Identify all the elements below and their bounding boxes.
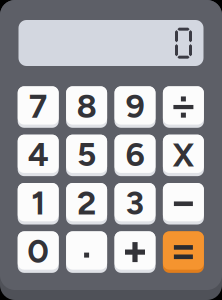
button[interactable]: 5	[66, 135, 107, 176]
staticText: 2	[77, 183, 96, 223]
button[interactable]: 1	[18, 183, 59, 224]
button[interactable]: 7	[18, 86, 59, 128]
staticText: 1	[31, 183, 45, 223]
button[interactable]: 2	[66, 183, 107, 224]
button[interactable]: 9	[114, 86, 155, 128]
button[interactable]: 0	[18, 231, 59, 273]
button[interactable]: 4	[18, 135, 59, 176]
staticText: X	[172, 136, 194, 175]
button[interactable]: 8	[66, 86, 107, 128]
staticText: 5	[77, 134, 96, 174]
staticText: 7	[29, 86, 48, 126]
button[interactable]: Plus	[114, 231, 155, 273]
staticText: 9	[125, 86, 144, 126]
button[interactable]: Minus	[163, 183, 204, 224]
button[interactable]: Equals	[163, 231, 204, 273]
button[interactable]: Divide	[163, 86, 204, 128]
staticText: 3	[125, 183, 144, 223]
button[interactable]: 6	[114, 135, 155, 176]
staticText: 0	[27, 231, 49, 271]
button[interactable]: Multiply	[163, 135, 204, 176]
button[interactable]: Decimal point	[66, 231, 107, 273]
staticText: 4	[28, 134, 49, 174]
button[interactable]: 3	[114, 183, 155, 224]
staticText: 8	[77, 86, 97, 126]
staticText: 6	[125, 134, 144, 174]
